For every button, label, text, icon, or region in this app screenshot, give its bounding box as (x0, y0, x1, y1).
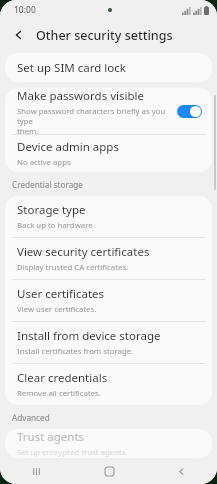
staticText: No active apps (17, 157, 71, 168)
button[interactable]: Device admin apps (5, 135, 212, 172)
button[interactable]: Recent apps (0, 458, 73, 484)
staticText: Install from device storage (17, 328, 161, 344)
button[interactable]: Make passwords visible (5, 88, 212, 134)
staticText: View user certificates. (17, 304, 97, 315)
button[interactable]: Trust agents (5, 429, 212, 458)
staticText: Show password characters briefly as you … (17, 106, 171, 134)
staticText: View security certificates (17, 244, 150, 260)
button[interactable]: Storage type (5, 196, 212, 237)
staticText: Advanced (12, 412, 50, 423)
button[interactable]: Navigate up (6, 22, 32, 48)
staticText: Remove all certificates. (17, 388, 101, 399)
button[interactable]: Set up SIM card lock (5, 53, 212, 82)
staticText: Display trusted CA certificates. (17, 262, 129, 273)
staticText: User certificates (17, 286, 105, 302)
staticText: Trust agents (17, 429, 85, 445)
button[interactable]: Make passwords visible toggle (177, 105, 202, 118)
staticText: Set up encrypted trust agents. (17, 447, 128, 458)
button[interactable]: View security certificates (5, 238, 212, 279)
button[interactable]: Home (73, 458, 145, 484)
staticText: Storage type (17, 202, 86, 218)
staticText: Make passwords visible (17, 88, 144, 104)
staticText: Install certificates from storage. (17, 346, 134, 357)
staticText: Back up to hardware (17, 220, 93, 231)
staticText: Other security settings (36, 27, 173, 44)
staticText: Device admin apps (17, 139, 119, 155)
button[interactable]: User certificates (5, 280, 212, 321)
button[interactable]: Back (145, 458, 217, 484)
staticText: Credential storage (12, 179, 83, 190)
button[interactable]: Clear credentials (5, 364, 212, 405)
staticText: Set up SIM card lock (17, 60, 126, 76)
staticText: 10:00 (14, 4, 36, 16)
button[interactable]: Install from device storage (5, 322, 212, 363)
staticText: Clear credentials (17, 370, 108, 386)
